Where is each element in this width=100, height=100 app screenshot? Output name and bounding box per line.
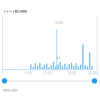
staticText: ツイート数の推移 bbox=[3, 9, 27, 13]
staticText: 12:00 bbox=[43, 71, 52, 75]
staticText: 22:00 bbox=[88, 71, 97, 75]
staticText: 44 bbox=[56, 56, 60, 60]
staticText: 6:00 bbox=[25, 71, 32, 75]
staticText: 18:00 bbox=[67, 71, 76, 75]
staticText: 期間の選択 bbox=[3, 88, 18, 92]
staticText: 12:00 bbox=[54, 20, 63, 25]
